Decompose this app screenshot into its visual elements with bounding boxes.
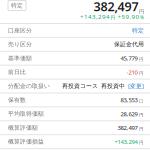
staticText: 再投資コース bbox=[62, 82, 98, 90]
staticText: 保有数 bbox=[8, 96, 26, 104]
staticText: 83,553 bbox=[120, 96, 137, 104]
staticText: 口 bbox=[139, 98, 144, 104]
staticText: -210 bbox=[126, 68, 137, 76]
staticText: 円 bbox=[139, 112, 144, 118]
staticText: 前日比 bbox=[8, 68, 26, 76]
staticText: 382,497 bbox=[93, 0, 138, 15]
staticText: 円 bbox=[139, 126, 144, 132]
staticText: 概算評価損益 bbox=[8, 138, 44, 145]
staticText: 特定 bbox=[132, 27, 144, 34]
staticText: 口座区分 bbox=[8, 27, 32, 34]
staticText: 円 bbox=[110, 15, 115, 21]
staticText: 円 bbox=[139, 140, 144, 146]
staticText: 平均取得価額 bbox=[8, 110, 44, 118]
staticText: [変更] bbox=[128, 82, 144, 90]
staticText: 概算評価額 bbox=[8, 124, 38, 131]
button[interactable]: 特定 bbox=[8, 0, 26, 10]
staticText: 45,779 bbox=[120, 54, 137, 62]
staticText: 円 bbox=[139, 8, 144, 15]
staticText: +59.90 bbox=[117, 12, 139, 21]
staticText: 特定 bbox=[11, 2, 23, 9]
staticText: 保証金代用 bbox=[114, 41, 144, 48]
staticText: 分配金の取扱い bbox=[8, 82, 50, 90]
staticText: 円 bbox=[139, 56, 144, 62]
staticText: 基準価額 bbox=[8, 55, 32, 62]
staticText: % bbox=[140, 14, 144, 21]
staticText: +143,294 bbox=[114, 138, 137, 146]
staticText: 円 bbox=[139, 70, 144, 76]
staticText: 28,629 bbox=[120, 110, 137, 118]
staticText: 382,497 bbox=[117, 124, 137, 132]
staticText: 再投資中 bbox=[101, 82, 125, 90]
staticText: +143,294 bbox=[80, 12, 110, 21]
staticText: 売り区分 bbox=[8, 41, 32, 48]
